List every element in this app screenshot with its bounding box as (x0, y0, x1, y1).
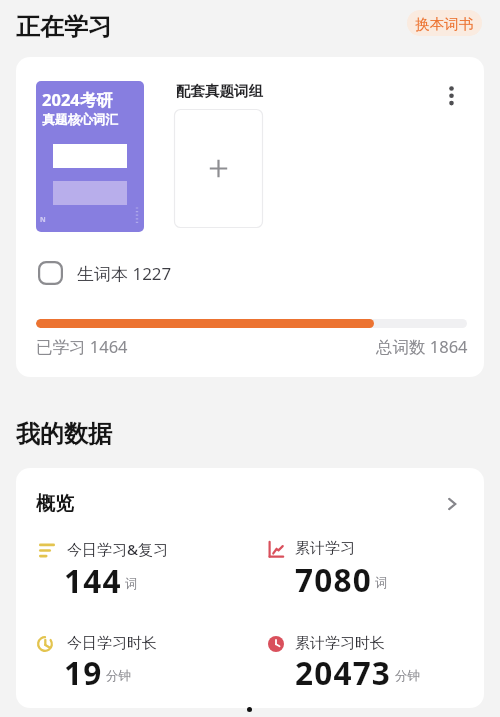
staticText: 换本词书 (415, 15, 474, 33)
button[interactable]: 今日学习时长 (37, 634, 247, 696)
staticText: 分钟 (106, 668, 131, 684)
staticText: 概览 (36, 492, 74, 516)
staticText: 已学习 1464 (36, 335, 128, 358)
staticText: N (40, 215, 46, 225)
staticText: 7080 (295, 558, 372, 601)
staticText: 我的数据 (16, 419, 112, 449)
staticText: 配套真题词组 (176, 82, 263, 100)
staticText: 总词数 1864 (376, 335, 468, 358)
staticText: 正在学习 (16, 12, 112, 42)
button[interactable]: 生词本 1227 (38, 253, 172, 293)
staticText: 19 (64, 651, 103, 694)
button[interactable]: 2024考研真题核心词汇 (36, 81, 144, 232)
button[interactable]: 累计学习 (268, 539, 478, 601)
staticText: 分钟 (395, 668, 420, 684)
staticText: 今日学习时长 (67, 634, 157, 653)
button[interactable]: 更多 (440, 77, 476, 113)
staticText: 词 (375, 575, 388, 591)
staticText: 累计学习时长 (295, 634, 385, 653)
button[interactable]: 概览 (16, 482, 484, 526)
staticText: 真题核心词汇 (42, 112, 119, 128)
button[interactable]: 换本词书 (407, 10, 482, 36)
staticText: 词 (125, 576, 138, 592)
button[interactable]: 添加词组 (174, 109, 263, 228)
staticText: 144 (64, 559, 122, 602)
staticText: 2024考研 (42, 88, 113, 111)
staticText: 累计学习 (295, 539, 355, 558)
staticText: 生词本 1227 (77, 262, 172, 285)
button[interactable]: 累计学习时长 (268, 634, 478, 696)
button[interactable]: 今日学习&复习 (37, 539, 247, 602)
staticText: 20473 (295, 651, 392, 694)
staticText: 今日学习&复习 (67, 539, 169, 559)
